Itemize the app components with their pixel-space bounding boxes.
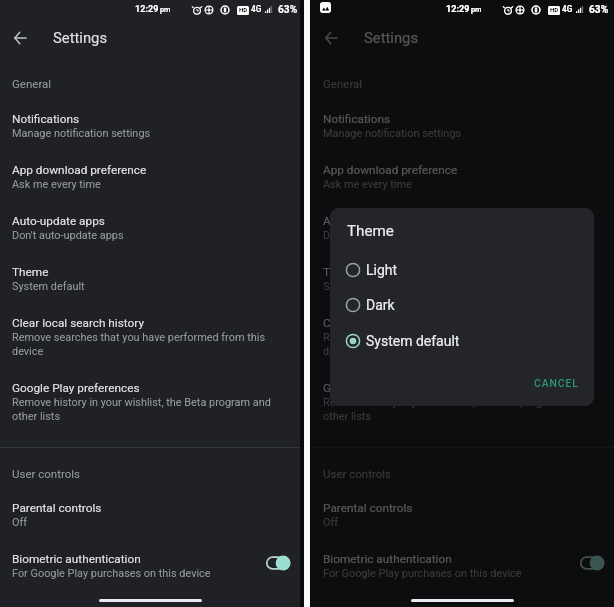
staticText: User controls bbox=[12, 467, 81, 480]
staticText: System default bbox=[366, 333, 460, 349]
staticText: CANCEL bbox=[534, 377, 579, 389]
staticText: 63% bbox=[589, 4, 609, 15]
button[interactable]: Parental controls bbox=[0, 501, 300, 529]
staticText: Remove history in your wishlist, the Bet… bbox=[12, 395, 288, 423]
staticText: Parental controls bbox=[323, 501, 413, 515]
staticText: Settings bbox=[53, 30, 108, 47]
staticText: Off bbox=[12, 515, 28, 529]
staticText: Light bbox=[366, 262, 398, 278]
staticText: 4G bbox=[562, 5, 573, 14]
staticText: Theme bbox=[12, 265, 49, 279]
staticText: Notifications bbox=[12, 112, 80, 126]
button[interactable]: Dark bbox=[330, 288, 594, 322]
staticText: HD bbox=[239, 7, 248, 14]
staticText: Biometric authentication bbox=[12, 552, 141, 566]
staticText: 12:29 bbox=[446, 4, 470, 14]
button[interactable]: Parental controls bbox=[311, 501, 614, 529]
button[interactable]: Back bbox=[313, 20, 349, 56]
staticText: Clear local search history bbox=[12, 316, 144, 330]
button[interactable]: Light bbox=[330, 253, 594, 287]
staticText: For Google Play purchases on this device bbox=[12, 566, 211, 580]
staticText: Theme bbox=[323, 265, 360, 279]
staticText: Manage notification settings bbox=[12, 126, 151, 140]
button[interactable]: Biometric authentication bbox=[0, 552, 300, 580]
staticText: Biometric authentication bbox=[323, 552, 452, 566]
staticText: User controls bbox=[323, 467, 392, 480]
staticText: Parental controls bbox=[12, 501, 102, 515]
staticText: HD bbox=[550, 7, 559, 14]
staticText: Settings bbox=[364, 30, 419, 47]
button[interactable]: Theme bbox=[311, 265, 614, 293]
staticText: 63% bbox=[278, 4, 298, 15]
staticText: Theme bbox=[347, 223, 394, 240]
staticText: 63% bbox=[589, 4, 609, 15]
button[interactable]: App download preference bbox=[0, 163, 300, 191]
button[interactable]: Back bbox=[2, 20, 38, 56]
staticText: Remove history in your wishlist, the Bet… bbox=[323, 395, 602, 423]
staticText: Auto-update apps bbox=[323, 214, 416, 228]
button[interactable]: Biometric authentication bbox=[311, 552, 614, 580]
staticText: 4G bbox=[562, 5, 573, 14]
staticText: General bbox=[323, 77, 363, 90]
staticText: Google Play preferences bbox=[12, 381, 140, 395]
staticText: Don't auto-update apps bbox=[323, 228, 435, 242]
staticText: Ask me every time bbox=[323, 177, 412, 191]
staticText: Don't auto-update apps bbox=[12, 228, 124, 242]
button[interactable]: App download preference bbox=[311, 163, 614, 191]
button[interactable]: System default bbox=[330, 324, 594, 358]
staticText: Dark bbox=[366, 297, 395, 313]
button[interactable]: Auto-update apps bbox=[0, 214, 300, 242]
button[interactable]: Theme bbox=[0, 265, 300, 293]
staticText: System default bbox=[323, 279, 396, 293]
staticText: General bbox=[12, 77, 52, 90]
staticText: Notifications bbox=[323, 112, 391, 126]
button[interactable]: Auto-update apps bbox=[311, 214, 614, 242]
staticText: Manage notification settings bbox=[323, 126, 462, 140]
staticText: App download preference bbox=[323, 163, 458, 177]
staticText: Remove searches that you have performed … bbox=[12, 330, 288, 358]
staticText: Google Play preferences bbox=[323, 381, 451, 395]
button[interactable]: CANCEL bbox=[527, 372, 586, 394]
staticText: Ask me every time bbox=[12, 177, 101, 191]
button[interactable]: Clear local search history bbox=[311, 316, 614, 358]
staticText: pm bbox=[160, 6, 171, 14]
staticText: pm bbox=[471, 6, 482, 14]
staticText: System default bbox=[12, 279, 85, 293]
button[interactable]: Biometric authentication toggle bbox=[266, 555, 290, 571]
button[interactable]: Notifications bbox=[311, 112, 614, 140]
staticText: Remove searches that you have performed … bbox=[323, 330, 602, 358]
button[interactable]: Biometric authentication toggle bbox=[580, 555, 604, 571]
staticText: HD bbox=[550, 7, 559, 14]
staticText: For Google Play purchases on this device bbox=[323, 566, 522, 580]
staticText: pm bbox=[471, 6, 482, 14]
staticText: 4G bbox=[251, 5, 262, 14]
staticText: Off bbox=[323, 515, 339, 529]
staticText: Auto-update apps bbox=[12, 214, 105, 228]
button[interactable]: Google Play preferences bbox=[311, 381, 614, 423]
button[interactable]: Notifications bbox=[0, 112, 300, 140]
staticText: 12:29 bbox=[446, 4, 470, 14]
staticText: 12:29 bbox=[135, 4, 159, 14]
button[interactable]: Clear local search history bbox=[0, 316, 300, 358]
staticText: App download preference bbox=[12, 163, 147, 177]
staticText: Clear local search history bbox=[323, 316, 455, 330]
button[interactable]: Google Play preferences bbox=[0, 381, 300, 423]
